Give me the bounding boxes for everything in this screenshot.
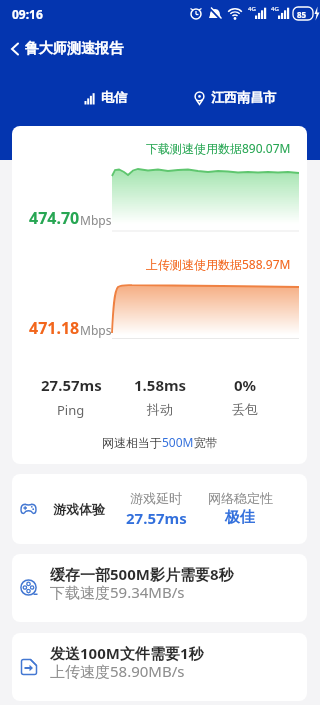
staticText: 鲁大师测速报告 [25, 40, 123, 58]
button[interactable]: 缓存一部500M影片需要8秒 [12, 554, 307, 622]
staticText: Mbps [80, 212, 112, 228]
staticText: 网络稳定性 [208, 490, 273, 506]
button[interactable]: 鲁大师测速报告 [0, 34, 320, 64]
staticText: 游戏延时 [130, 490, 182, 506]
staticText: 丢包 [232, 401, 258, 417]
staticText: 缓存一部500M影片需要8秒 [50, 564, 234, 584]
staticText: Mbps [80, 322, 112, 338]
staticText: 网速相当于500M宽带 [102, 434, 218, 450]
staticText: 474.70 [29, 207, 80, 229]
staticText: 4G [248, 5, 256, 13]
staticText: 27.57ms [126, 508, 187, 528]
staticText: 电信 [101, 89, 127, 105]
staticText: 极佳 [225, 508, 255, 527]
staticText: 471.18 [29, 317, 80, 339]
staticText: 上传速度58.90MB/s [50, 661, 185, 681]
button[interactable]: 游戏体验 [12, 474, 307, 544]
staticText: Ping [57, 401, 85, 419]
staticText: 09:16 [12, 6, 43, 22]
staticText: 4G [271, 5, 279, 13]
staticText: 0% [234, 375, 257, 395]
staticText: 1.58ms [134, 375, 187, 395]
button[interactable]: 发送100M文件需要1秒 [12, 633, 307, 701]
staticText: 上传测速使用数据588.97M [146, 256, 291, 272]
staticText: 27.57ms [41, 375, 102, 395]
staticText: 85 [297, 9, 307, 20]
staticText: 游戏体验 [53, 501, 105, 517]
staticText: 江西南昌市 [211, 89, 276, 105]
staticText: 抖动 [147, 401, 173, 417]
staticText: 下载测速使用数据890.07M [146, 140, 291, 156]
staticText: 下载速度59.34MB/s [50, 582, 185, 602]
staticText: 发送100M文件需要1秒 [50, 643, 204, 663]
